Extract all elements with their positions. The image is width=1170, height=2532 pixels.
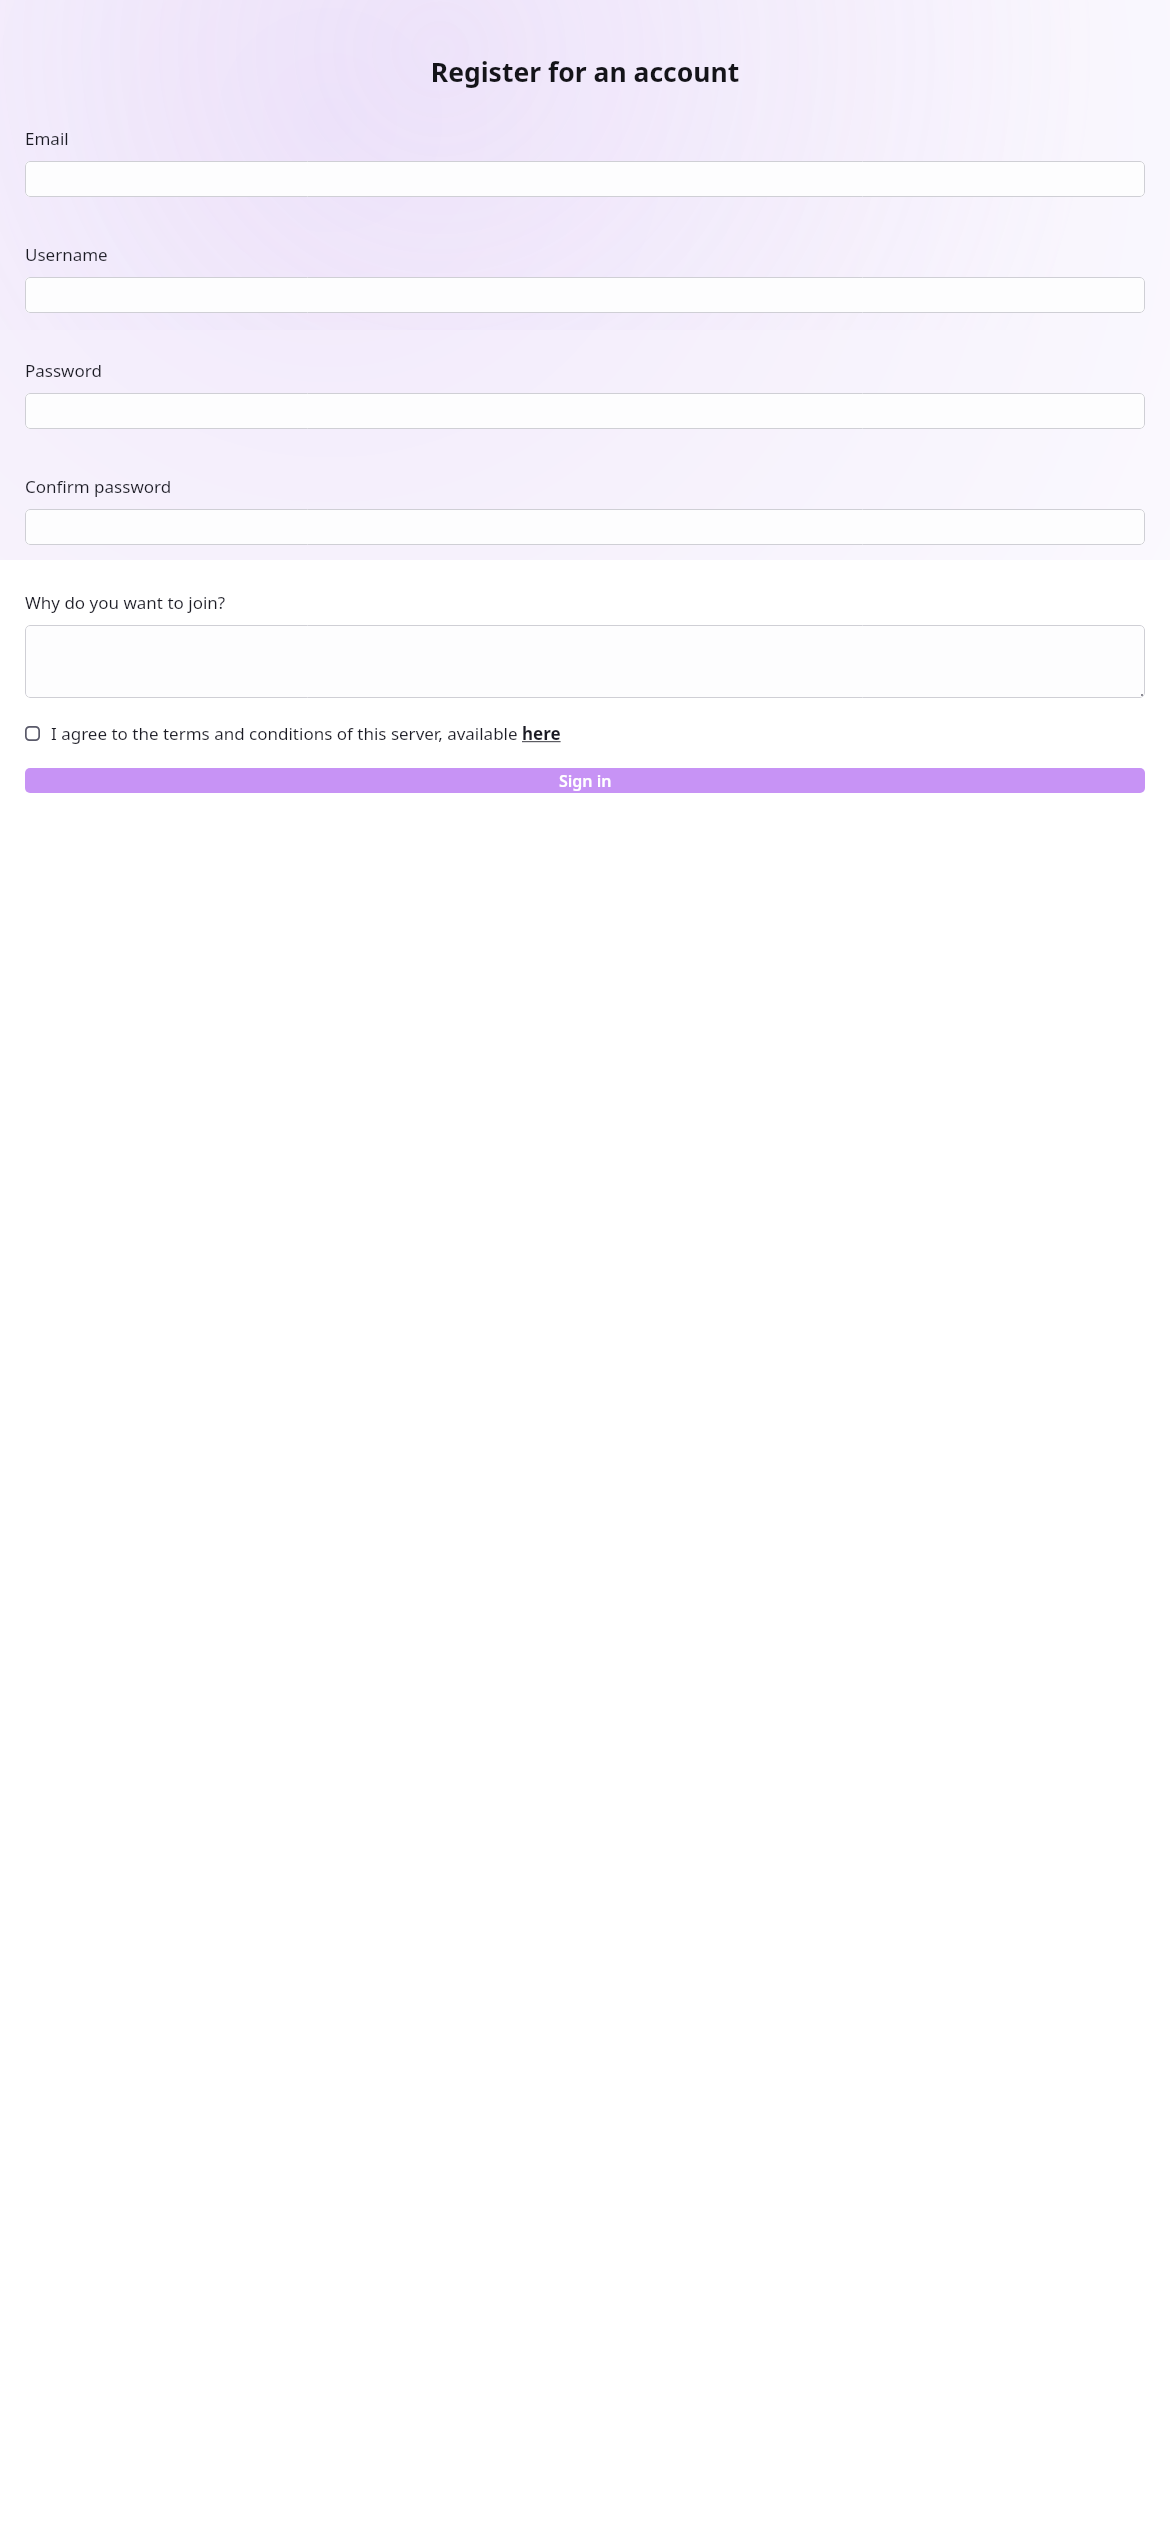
staticText: Confirm password [25, 475, 172, 498]
staticText: Sign in [559, 770, 612, 792]
staticText: Email [25, 127, 69, 150]
staticText: Why do you want to join? [25, 591, 226, 614]
button[interactable] [25, 625, 1145, 698]
button[interactable] [25, 393, 1145, 429]
button[interactable] [25, 277, 1145, 313]
button[interactable] [25, 509, 1145, 545]
staticText: Username [25, 243, 108, 266]
button[interactable]: I agree to the terms and conditions [25, 722, 1145, 745]
button[interactable]: I agree to the terms and conditions [25, 726, 40, 741]
button[interactable] [25, 161, 1145, 197]
staticText: Register for an account [25, 54, 1145, 90]
staticText: I agree to the terms and conditions of t… [51, 722, 561, 745]
staticText: Password [25, 359, 102, 382]
button[interactable]: Sign in [25, 768, 1145, 793]
